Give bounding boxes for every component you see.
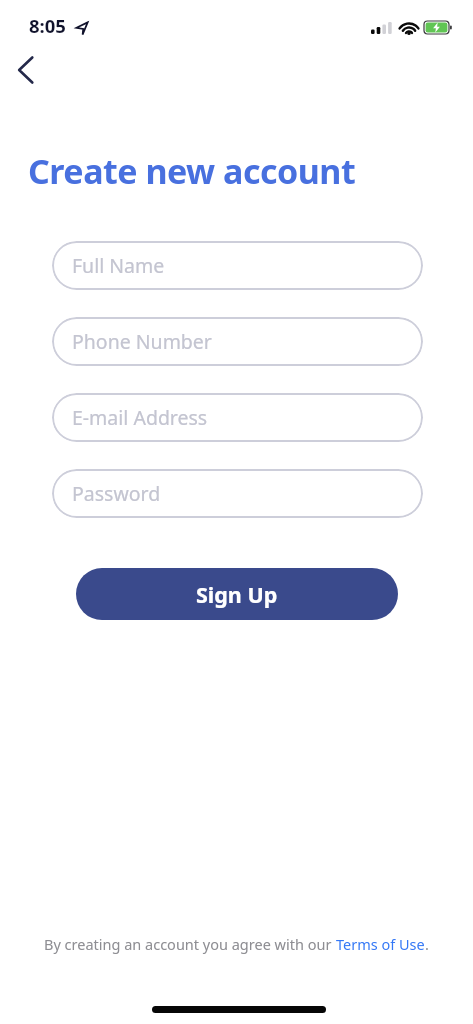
button[interactable] — [4, 48, 48, 92]
staticText: By creating an account you agree with ou… — [44, 934, 336, 954]
staticText: . — [425, 934, 429, 954]
button[interactable]: E-mail Address — [52, 393, 423, 442]
staticText: Phone Number — [72, 328, 212, 355]
staticText: Full Name — [72, 252, 165, 279]
staticText: Sign Up — [196, 580, 278, 609]
button[interactable]: Sign Up — [76, 568, 398, 620]
staticText: Create new account — [28, 148, 356, 194]
button[interactable]: Terms of Use — [336, 934, 425, 954]
button[interactable]: Password — [52, 469, 423, 518]
button[interactable]: Phone Number — [52, 317, 423, 366]
staticText: E-mail Address — [72, 404, 208, 431]
button[interactable]: Full Name — [52, 241, 423, 290]
staticText: 8:05 — [29, 13, 66, 38]
staticText: Password — [72, 480, 161, 507]
